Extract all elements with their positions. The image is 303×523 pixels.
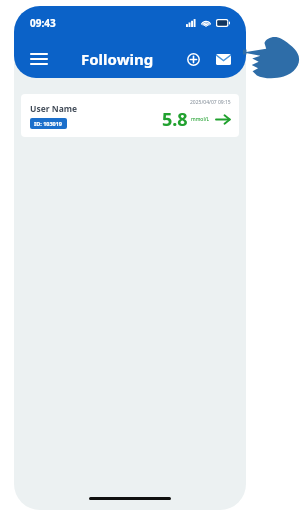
staticText: 09:43 xyxy=(30,16,56,30)
button[interactable]: User Name xyxy=(21,94,239,137)
staticText: ID: 103019 xyxy=(34,120,63,127)
button[interactable]: Add xyxy=(180,46,206,72)
staticText: User Name xyxy=(30,103,78,115)
staticText: Following xyxy=(81,49,154,69)
staticText: mmol/L xyxy=(191,116,210,123)
button[interactable]: Messages xyxy=(210,46,236,72)
staticText: 2025/04/07 09:15 xyxy=(190,99,231,106)
staticText: 5.8 xyxy=(162,107,188,132)
button[interactable]: Menu xyxy=(24,44,54,74)
